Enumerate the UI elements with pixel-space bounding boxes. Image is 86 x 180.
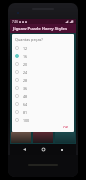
button[interactable]: Back (20, 145, 29, 154)
staticText: 64 (23, 102, 28, 107)
button[interactable]: 48 (15, 92, 71, 100)
button[interactable]: 12 (15, 44, 71, 52)
button[interactable]: Recent apps (57, 145, 66, 154)
staticText: 100 (23, 118, 30, 123)
staticText: 48 (23, 94, 28, 99)
button[interactable]: 28 (15, 76, 71, 84)
staticText: OK (63, 125, 69, 128)
staticText: 7:26 (12, 20, 18, 24)
staticText: 28 (23, 78, 28, 83)
button[interactable]: 24 (15, 68, 71, 76)
button[interactable]: Puzzle image (11, 132, 31, 143)
button[interactable]: 81 (15, 108, 71, 116)
button[interactable]: 20 (15, 60, 71, 68)
staticText: Jigsaw Puzzle Harry Styles (13, 26, 68, 32)
button[interactable]: 64 (15, 100, 71, 108)
button[interactable]: Puzzle image (55, 132, 75, 143)
button[interactable]: Puzzle image (33, 132, 53, 143)
staticText: 81 (23, 110, 28, 115)
staticText: 20 (23, 62, 28, 67)
staticText: 36 (23, 86, 28, 91)
button[interactable]: 36 (15, 84, 71, 92)
staticText: Quantas peças? (15, 37, 43, 42)
button[interactable]: Home (39, 145, 48, 154)
button[interactable]: 100 (15, 116, 71, 124)
staticText: 24 (23, 70, 28, 75)
staticText: 16 (23, 54, 28, 59)
button[interactable]: 16 (15, 52, 71, 60)
button[interactable]: OK (61, 124, 71, 129)
staticText: 12 (23, 46, 28, 51)
